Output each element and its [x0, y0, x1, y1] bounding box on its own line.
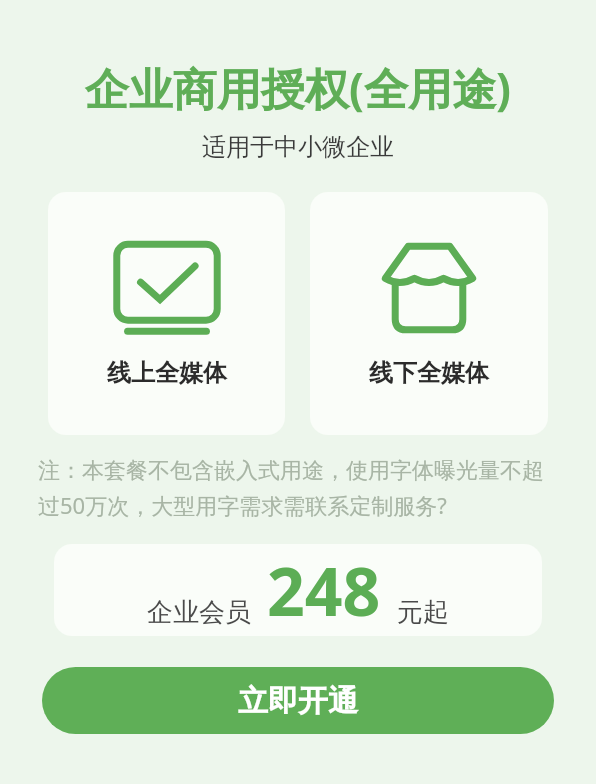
staticText: 注：本套餐不包含嵌入式用途，使用字体曝光量不超过50万次，大型用字需求需联系定制…: [38, 457, 558, 520]
other: Online media: [113, 240, 221, 336]
button[interactable]: Offline media: [310, 192, 548, 435]
staticText: 元起: [397, 596, 449, 629]
staticText: 线下全媒体: [369, 358, 489, 388]
staticText: 适用于中小微企业: [202, 132, 394, 162]
staticText: 企业商用授权(全用途): [85, 58, 511, 118]
staticText: 立即开通: [238, 682, 358, 720]
staticText: 企业会员: [147, 596, 251, 629]
other: Offline media: [377, 240, 481, 336]
staticText: 线上全媒体: [107, 358, 227, 388]
button[interactable]: 立即开通: [42, 667, 554, 734]
staticText: 248: [267, 545, 381, 635]
button[interactable]: 企业会员: [54, 544, 542, 636]
button[interactable]: Online media: [48, 192, 285, 435]
